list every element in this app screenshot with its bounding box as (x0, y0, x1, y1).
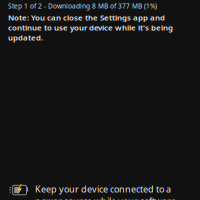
staticText: Keep your device connected to a power so… (35, 183, 176, 200)
staticText: Step 1 of 2 - Downloading 8 MB of 377 MB… (8, 1, 157, 10)
staticText: Note: You can close the Settings app and… (8, 12, 173, 43)
